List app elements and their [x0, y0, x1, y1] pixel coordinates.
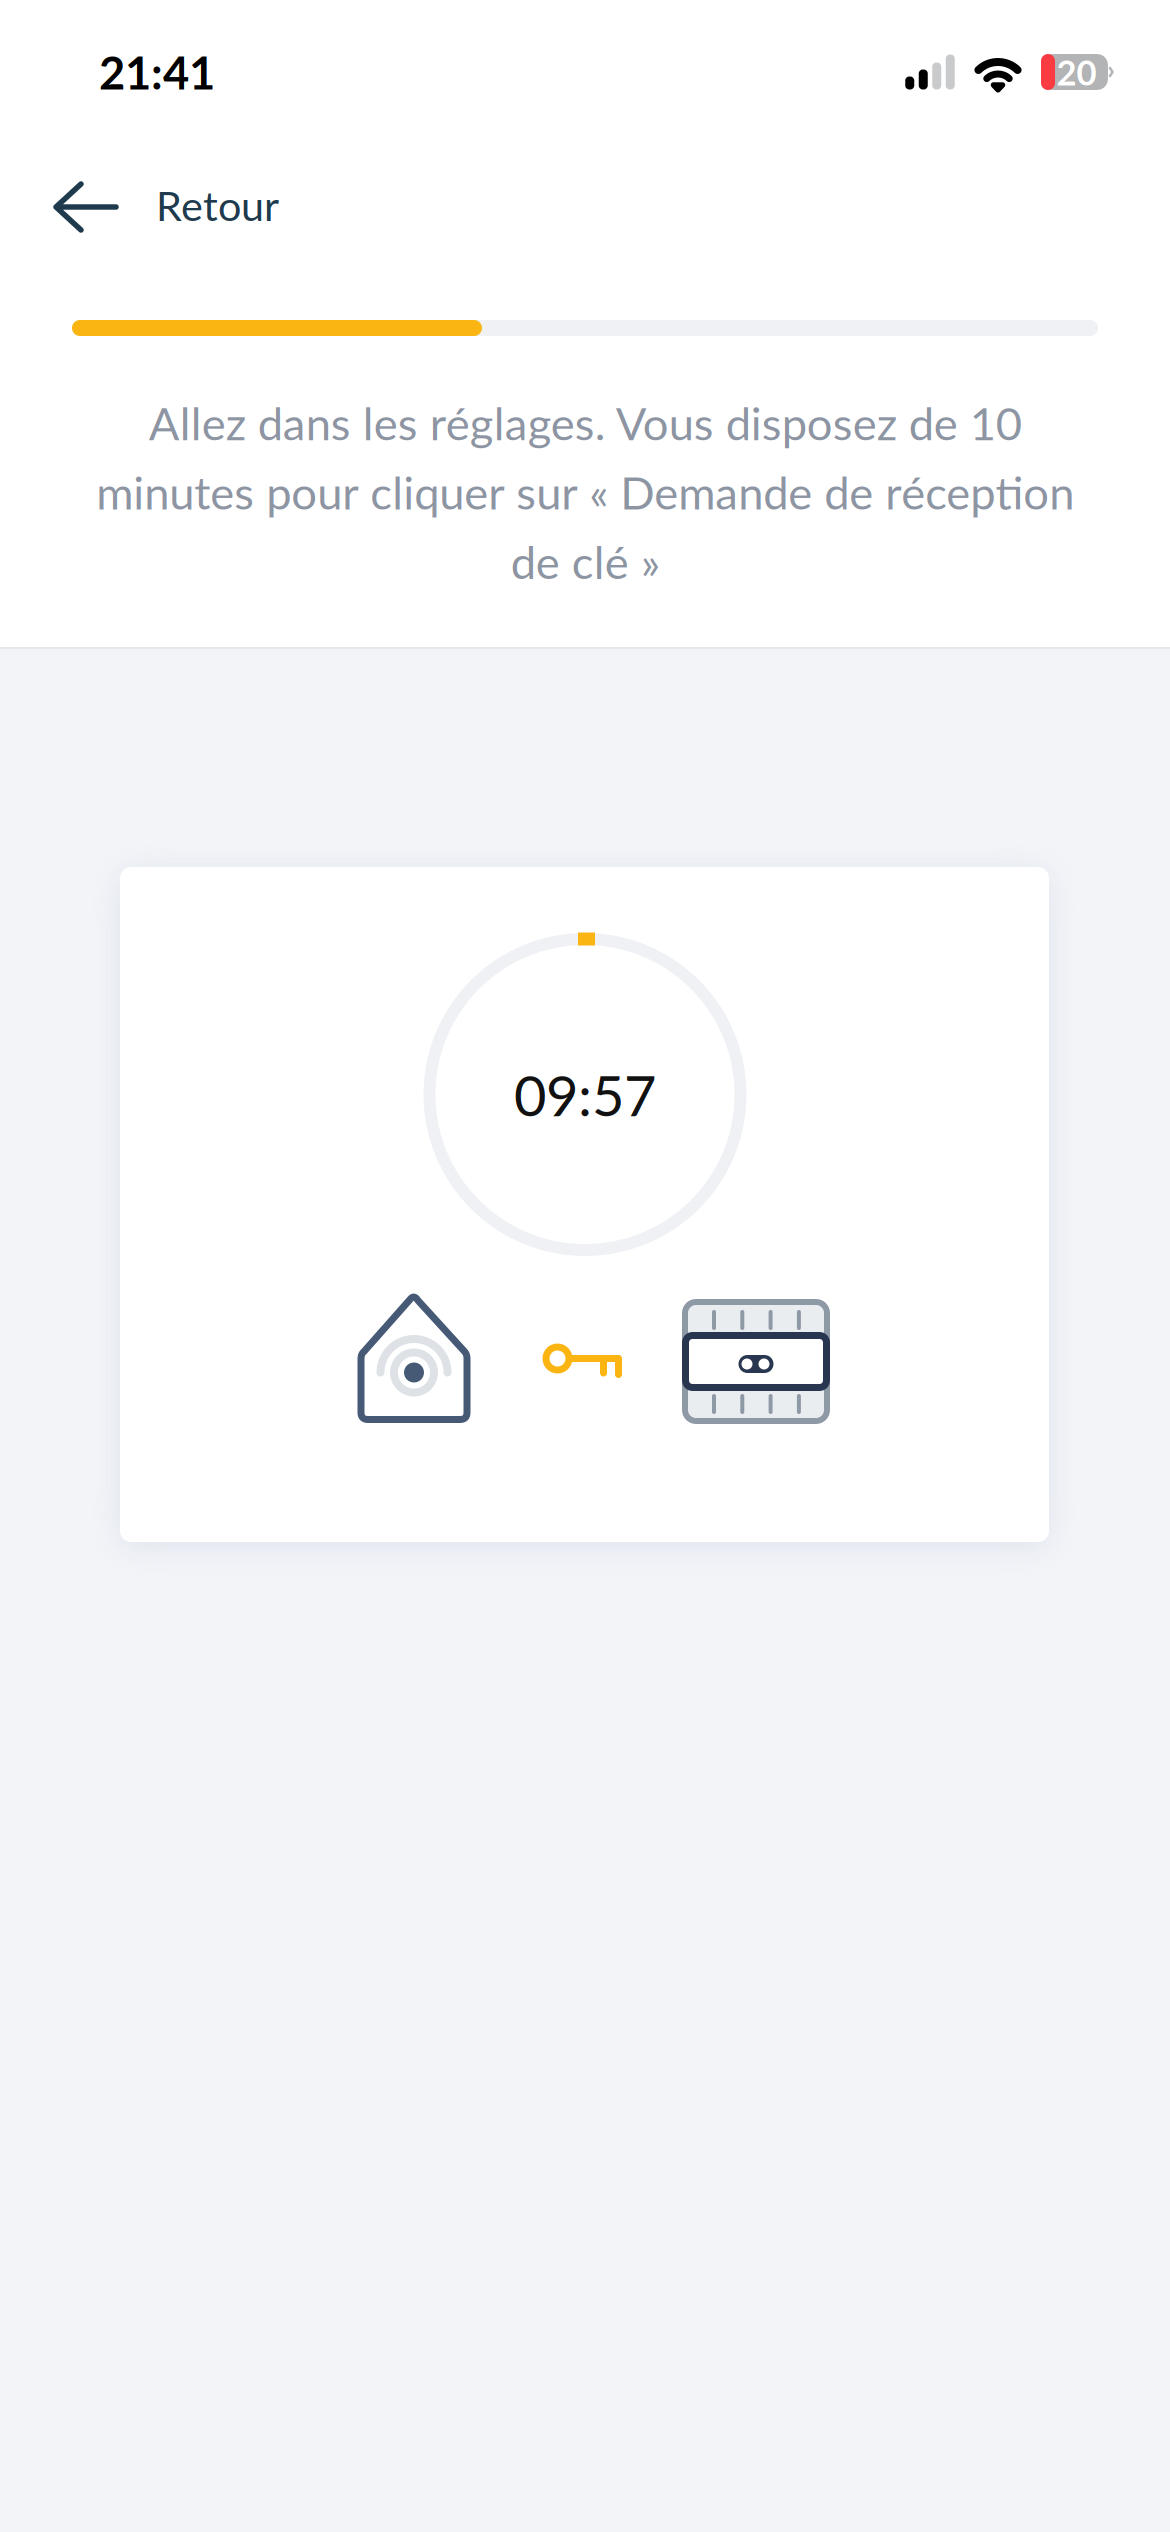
button[interactable]: Retour — [0, 147, 1170, 267]
staticText: 21:41 — [99, 45, 215, 99]
staticText: 09:57 — [514, 1061, 656, 1128]
staticText: 20 — [1056, 51, 1096, 93]
staticText: Retour — [156, 180, 279, 230]
staticText: Allez dans les réglages. Vous disposez d… — [96, 395, 1074, 589]
